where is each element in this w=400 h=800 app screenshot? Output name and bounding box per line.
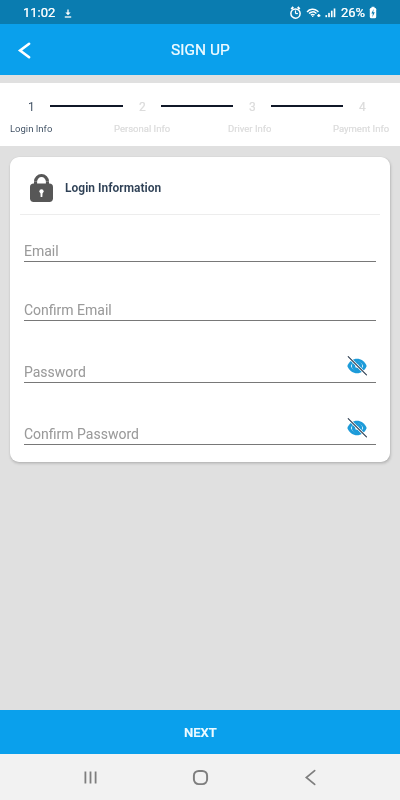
button[interactable]: Confirm Password (24, 423, 376, 444)
staticText: 3 (249, 100, 256, 114)
button[interactable]: Show password (342, 354, 372, 378)
staticText: Confirm Email (24, 302, 112, 318)
staticText: Login Information (65, 181, 162, 195)
staticText: 4 (359, 100, 366, 114)
button[interactable]: Show password (342, 416, 372, 440)
staticText: Email (24, 243, 59, 259)
staticText: NEXT (184, 725, 217, 740)
button[interactable]: Back (288, 755, 332, 799)
staticText: 1 (28, 100, 35, 114)
button[interactable]: Password (24, 361, 376, 382)
staticText: 26% (341, 5, 366, 20)
staticText: 11:02 (23, 5, 56, 20)
staticText: 2 (139, 100, 146, 114)
staticText: Personal Info (114, 123, 171, 134)
staticText: Driver Info (228, 123, 272, 134)
staticText: Password (24, 364, 86, 380)
staticText: Confirm Password (24, 426, 139, 442)
button[interactable]: Home (178, 755, 222, 799)
staticText: Login Info (10, 123, 53, 134)
staticText: SIGN UP (171, 41, 230, 59)
staticText: Payment Info (333, 123, 390, 134)
button[interactable]: NEXT (0, 710, 400, 754)
button[interactable]: Email (24, 240, 376, 261)
button[interactable]: Confirm Email (24, 299, 376, 320)
button[interactable]: Recent apps (68, 755, 112, 799)
button[interactable]: Back (2, 28, 46, 72)
